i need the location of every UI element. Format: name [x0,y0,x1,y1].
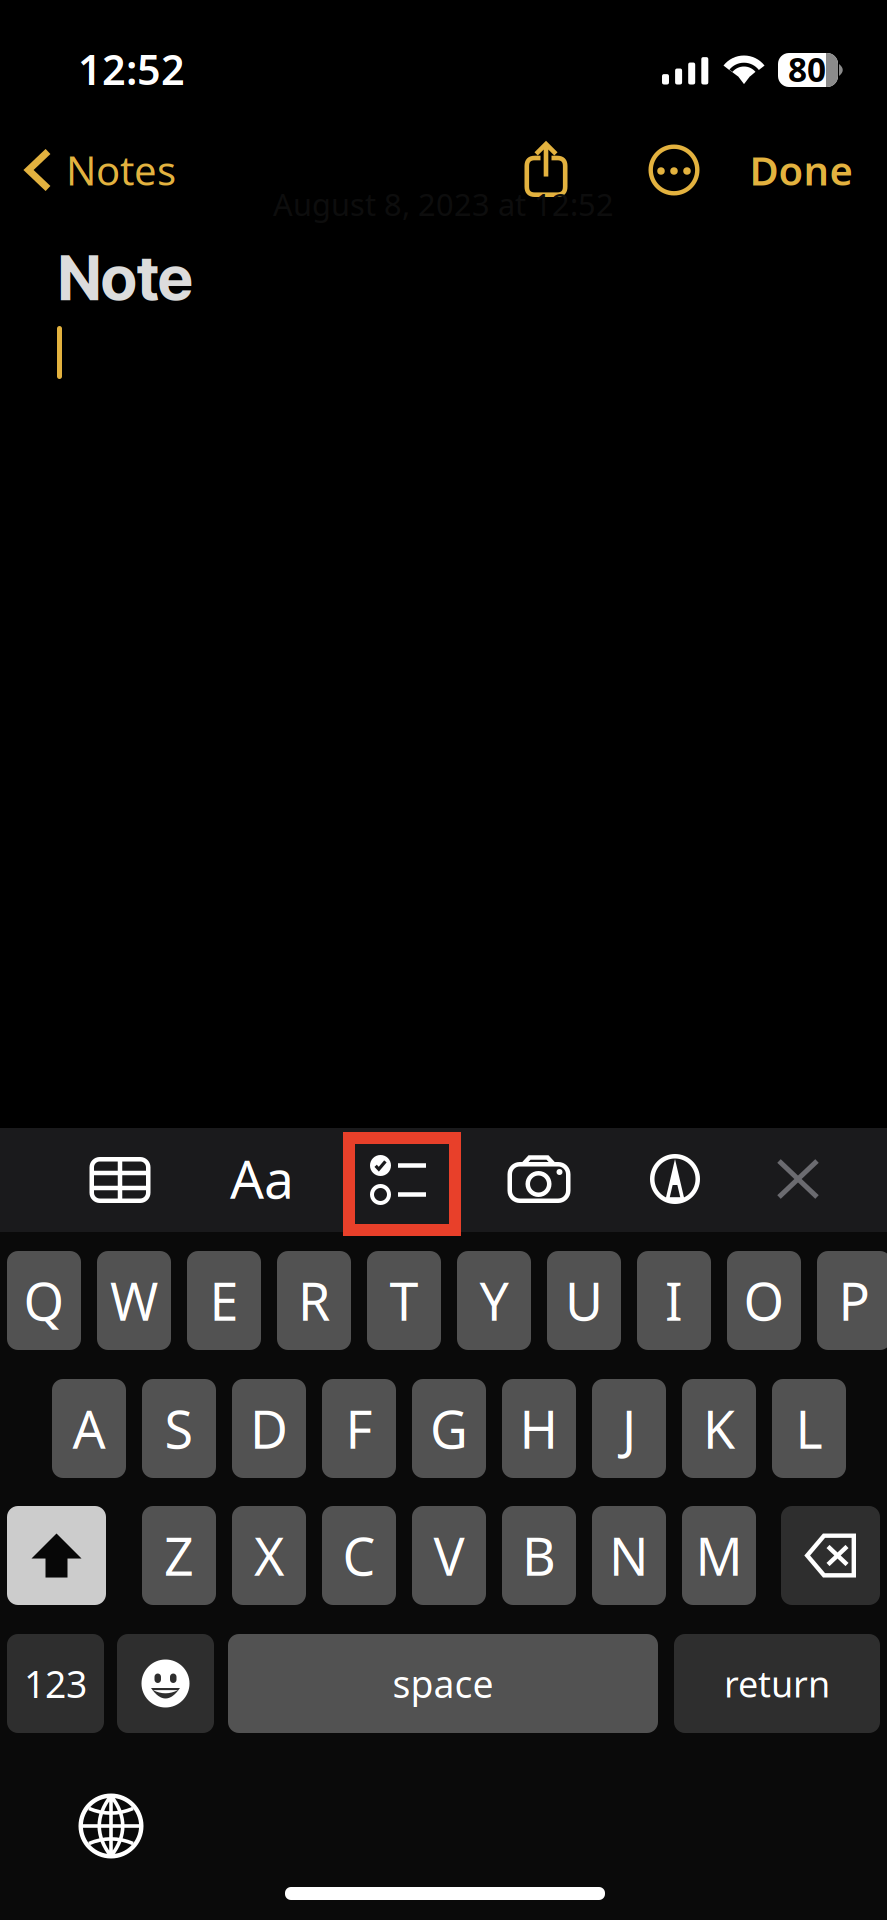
button[interactable]: D [232,1379,306,1478]
button[interactable]: Shift [7,1506,106,1605]
button[interactable]: 123 [7,1634,104,1733]
staticText: August 8, 2023 at 12:52 [273,184,614,224]
staticText: return [724,1660,830,1707]
staticText: O [743,1266,784,1335]
staticText: X [254,1521,284,1590]
button[interactable]: G [412,1379,486,1478]
button[interactable]: W [97,1251,171,1350]
button[interactable]: Checklist [343,1132,461,1236]
button[interactable]: Notes [25,130,225,210]
staticText: P [838,1266,869,1335]
staticText: 12:52 [78,42,185,96]
staticText: S [164,1394,193,1463]
button[interactable]: Done [731,127,871,213]
staticText: E [209,1266,238,1335]
button[interactable]: F [322,1379,396,1478]
staticText: K [703,1394,735,1463]
staticText: 123 [24,1659,87,1708]
button[interactable]: Switch keyboard [63,1778,159,1874]
button[interactable]: S [142,1379,216,1478]
button[interactable]: U [547,1251,621,1350]
staticText: B [522,1521,556,1590]
button[interactable]: Delete [781,1506,880,1605]
staticText: C [342,1521,375,1590]
button[interactable]: K [682,1379,756,1478]
staticText: W [110,1266,158,1335]
staticText: R [298,1266,330,1335]
button[interactable]: O [727,1251,801,1350]
staticText: I [665,1266,683,1335]
button[interactable]: H [502,1379,576,1478]
button[interactable]: M [682,1506,756,1605]
staticText: H [519,1394,558,1463]
staticText: V [433,1521,464,1590]
button[interactable]: Y [457,1251,531,1350]
button[interactable]: I [637,1251,711,1350]
button[interactable]: Close toolbar [742,1127,854,1231]
staticText: F [345,1394,372,1463]
staticText: 80 [788,47,826,91]
button[interactable]: V [412,1506,486,1605]
button[interactable]: N [592,1506,666,1605]
staticText: Notes [66,143,176,196]
staticText: Aa [230,1143,294,1213]
button[interactable]: J [592,1379,666,1478]
button[interactable]: Share [503,126,589,212]
staticText: M [695,1521,742,1590]
button[interactable]: T [367,1251,441,1350]
button[interactable]: E [187,1251,261,1350]
button[interactable]: Camera [483,1127,595,1231]
staticText: G [430,1394,468,1463]
staticText: space [392,1659,493,1708]
staticText: T [389,1266,418,1335]
staticText: U [565,1266,603,1335]
button[interactable]: space [228,1634,658,1733]
button[interactable]: Markup [619,1127,731,1231]
staticText: Y [479,1266,508,1335]
button[interactable]: X [232,1506,306,1605]
button[interactable]: Z [142,1506,216,1605]
button[interactable]: Emoji [117,1634,214,1733]
button[interactable]: return [674,1634,880,1733]
staticText: Done [749,143,852,196]
staticText: D [250,1394,288,1463]
staticText: J [622,1394,636,1463]
staticText: Q [23,1266,64,1335]
button[interactable]: A [52,1379,126,1478]
button[interactable]: Q [7,1251,81,1350]
staticText: A [72,1394,105,1463]
button[interactable]: L [772,1379,846,1478]
button[interactable]: Table [64,1128,176,1232]
staticText: Z [164,1521,194,1590]
staticText: N [609,1521,649,1590]
staticText: L [795,1394,822,1463]
button[interactable]: B [502,1506,576,1605]
button[interactable]: R [277,1251,351,1350]
button[interactable]: More [631,127,717,213]
button[interactable]: C [322,1506,396,1605]
button[interactable]: P [817,1251,887,1350]
staticText: Note [58,241,193,315]
button[interactable]: Text format [206,1126,318,1230]
